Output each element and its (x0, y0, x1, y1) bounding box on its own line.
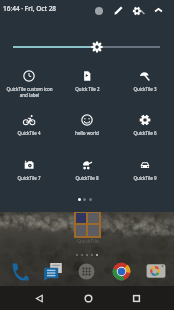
button[interactable]: Camera (145, 260, 167, 282)
staticText: QuickTile 3 (133, 86, 157, 92)
button[interactable]: QuickTile custom icon and label (0, 54, 58, 98)
staticText: 16:44 · Fri, Oct 28 (3, 4, 57, 13)
button[interactable]: All apps (75, 260, 97, 282)
button[interactable]: QuickTile 4 (0, 98, 58, 142)
button[interactable]: QuickTile 9 (116, 143, 174, 187)
button[interactable]: Quick Tile 2 (58, 54, 116, 98)
button[interactable]: QuickTile 3 (116, 54, 174, 98)
staticText: QuickTile (77, 238, 99, 245)
button[interactable]: hello world (58, 98, 116, 142)
button[interactable]: Settings (129, 2, 146, 19)
staticText: QuickTile 9 (133, 175, 157, 181)
staticText: QuickTile 4 (17, 130, 41, 136)
button[interactable]: Home (78, 288, 98, 308)
staticText: QuickTile custom icon and label (6, 86, 53, 98)
button[interactable]: QuickTile 8 (58, 143, 116, 187)
staticText: QuickTile 7 (17, 175, 41, 181)
button[interactable]: Chrome (110, 260, 132, 282)
button[interactable]: QuickTile 6 (116, 98, 174, 142)
button[interactable]: User (91, 3, 106, 18)
button[interactable]: QuickTile 7 (0, 143, 58, 187)
staticText: QuickTile 8 (75, 175, 99, 181)
button[interactable]: Collapse (151, 3, 166, 18)
button[interactable]: Back (29, 288, 49, 308)
staticText: Quick Tile 2 (75, 86, 100, 92)
button[interactable]: Edit (111, 3, 126, 18)
button[interactable]: Recents (126, 288, 146, 308)
button[interactable]: Brightness (0, 39, 174, 55)
staticText: QuickTile 6 (133, 130, 157, 136)
staticText: hello world (75, 130, 99, 136)
button[interactable]: QuickTile app (76, 213, 99, 236)
button[interactable]: Phone (8, 260, 30, 282)
button[interactable]: Messages (42, 260, 64, 282)
